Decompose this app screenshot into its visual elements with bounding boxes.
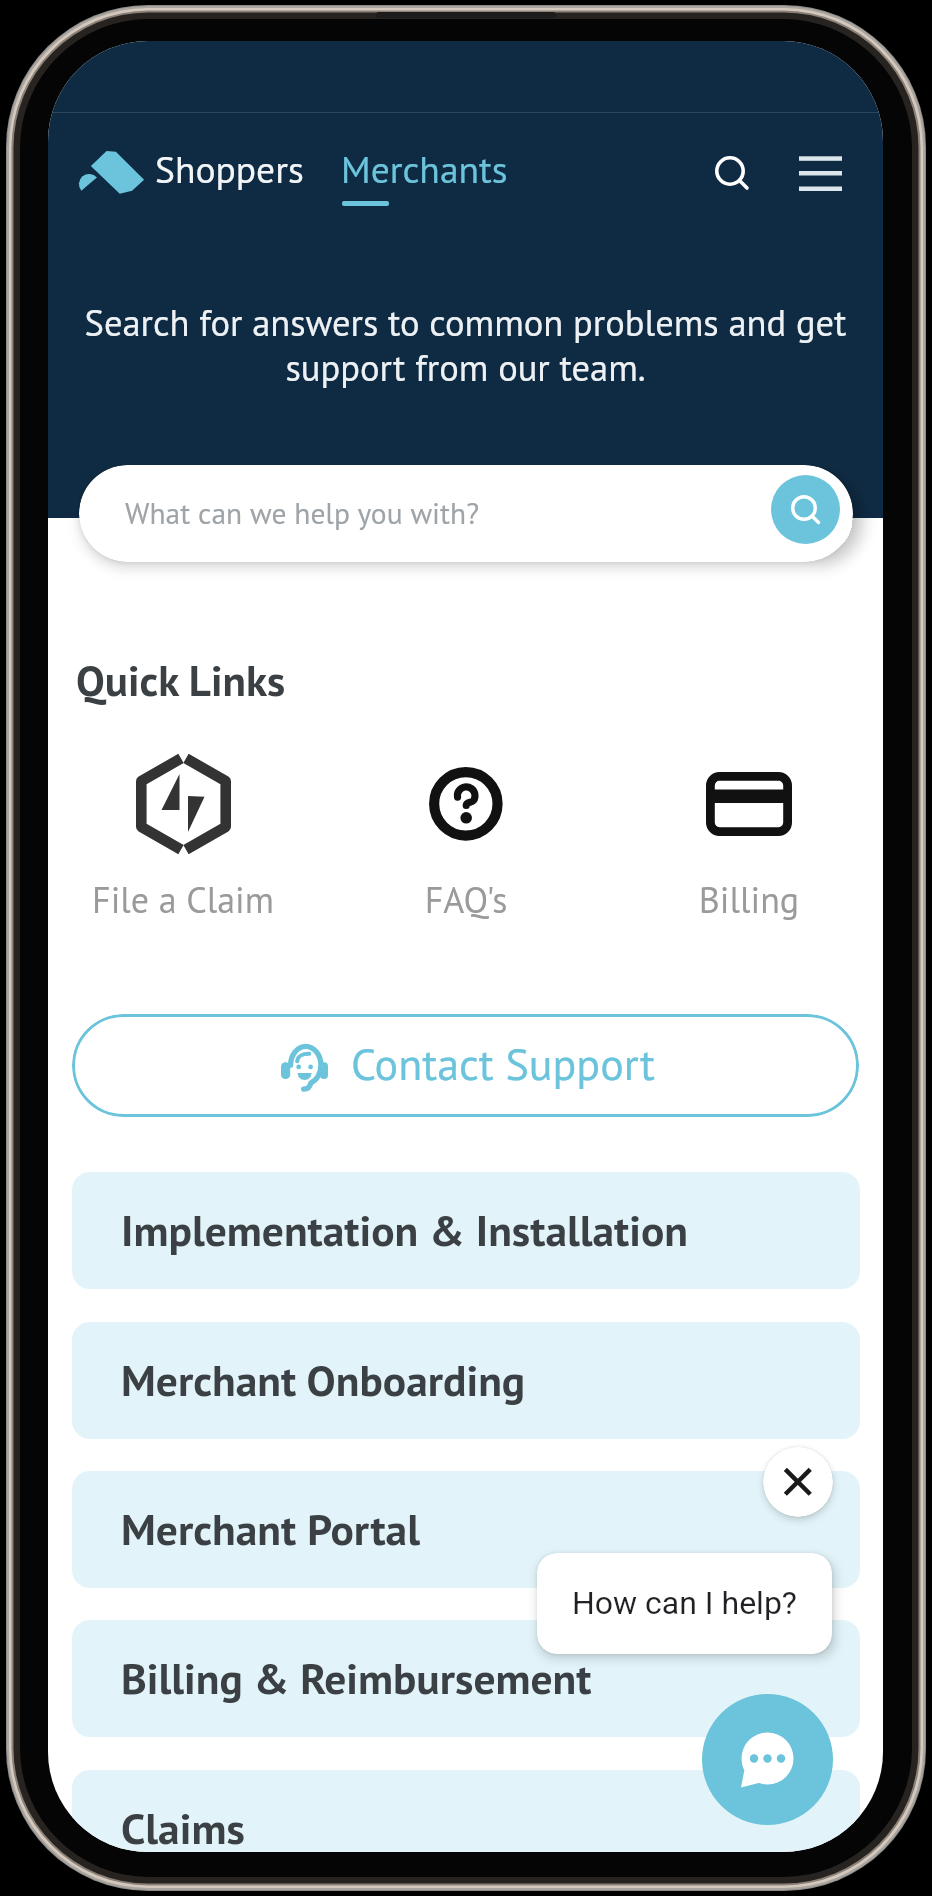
button[interactable]: Merchant Portal: [72, 1471, 860, 1588]
staticText: How can I help?: [537, 1584, 832, 1622]
staticText: Search for answers to common problems an…: [78, 299, 853, 391]
staticText: Claims: [121, 1800, 245, 1852]
staticText: File a Claim: [52, 876, 314, 923]
button[interactable]: Shoppers: [148, 141, 356, 203]
button[interactable]: Merchant Onboarding: [72, 1322, 860, 1439]
staticText: Implementation & Installation: [121, 1202, 689, 1258]
button[interactable]: Billing & Reimbursement: [72, 1620, 860, 1737]
staticText: Contact Support: [351, 1035, 655, 1092]
button[interactable]: Close chat: [763, 1447, 833, 1517]
staticText: Billing: [618, 876, 880, 923]
button[interactable]: File a Claim: [52, 746, 314, 926]
staticText: Merchant Portal: [121, 1501, 420, 1557]
staticText: Merchants: [341, 145, 508, 194]
button[interactable]: Open chat: [702, 1694, 833, 1825]
button[interactable]: Claims: [72, 1770, 860, 1852]
button[interactable]: Implementation & Installation: [72, 1172, 860, 1289]
button[interactable]: Search: [698, 139, 762, 203]
staticText: Merchant Onboarding: [121, 1352, 526, 1408]
staticText: Shoppers: [155, 145, 304, 194]
staticText: Quick Links: [76, 652, 286, 708]
button[interactable]: Contact Support: [72, 1014, 859, 1117]
button[interactable]: How can I help?: [537, 1553, 832, 1654]
button[interactable]: What can we help you with?: [79, 465, 853, 562]
staticText: Billing & Reimbursement: [121, 1650, 592, 1706]
staticText: FAQ's: [335, 876, 597, 923]
staticText: What can we help you with?: [125, 494, 480, 532]
button[interactable]: Menu: [788, 139, 852, 203]
button[interactable]: Merchants: [335, 141, 517, 211]
button[interactable]: Billing: [618, 746, 880, 926]
button[interactable]: FAQ's: [335, 746, 597, 926]
button[interactable]: Submit search: [771, 475, 840, 544]
